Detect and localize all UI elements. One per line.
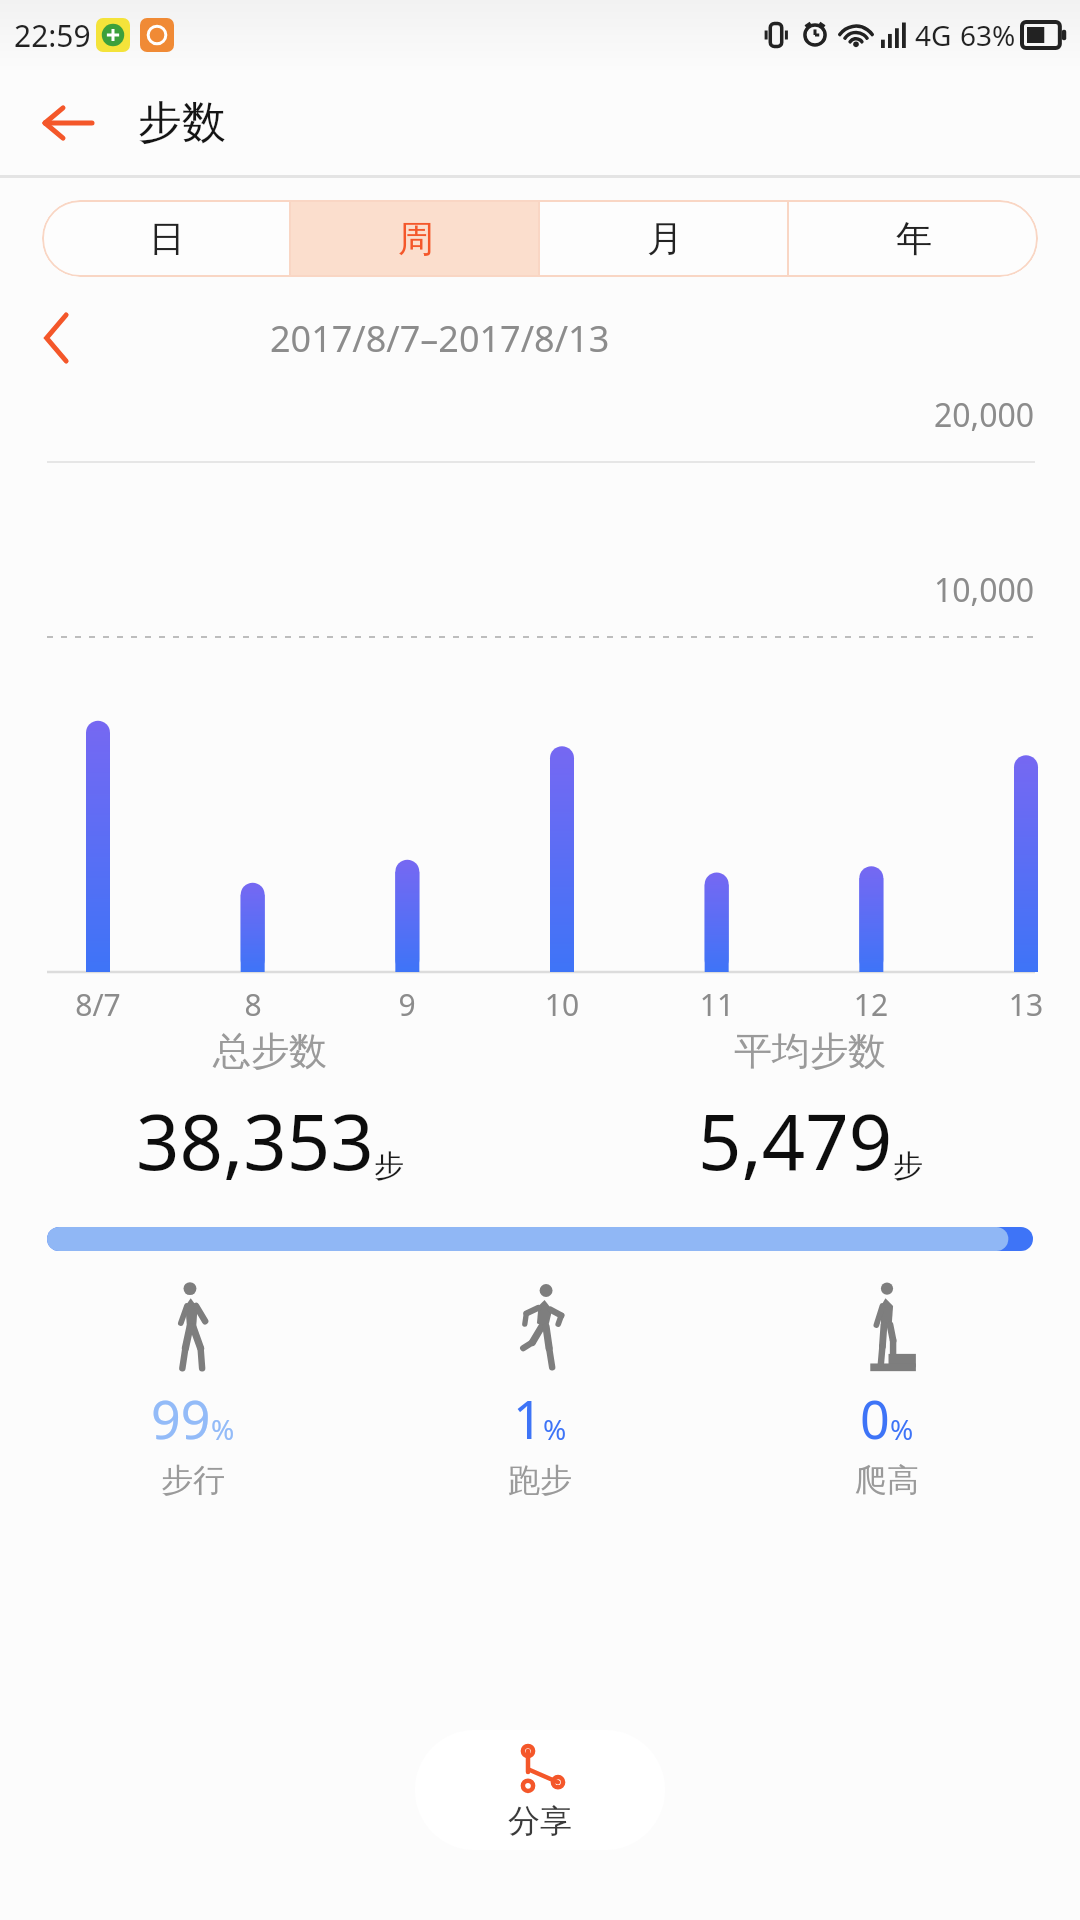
staticText: % bbox=[211, 1410, 235, 1448]
button[interactable]: 月 bbox=[540, 200, 789, 277]
staticText: 步数 bbox=[138, 95, 226, 150]
staticText: 步 bbox=[374, 1147, 404, 1185]
staticText: 爬高 bbox=[855, 1460, 919, 1500]
staticText: 5,479 bbox=[698, 1089, 893, 1193]
staticText: 38,353 bbox=[136, 1089, 374, 1193]
staticText: 9 bbox=[367, 984, 447, 1025]
staticText: 20,000 bbox=[934, 393, 1035, 437]
staticText: % bbox=[890, 1410, 914, 1448]
button[interactable]: 分享 bbox=[415, 1730, 665, 1850]
staticText: 步行 bbox=[161, 1460, 225, 1500]
button[interactable]: Back bbox=[30, 86, 104, 160]
staticText: 99 bbox=[151, 1383, 211, 1454]
staticText: 周 bbox=[398, 216, 434, 261]
button[interactable]: 1 bbox=[366, 1279, 713, 1500]
button[interactable]: 0 bbox=[713, 1279, 1060, 1500]
staticText: 总步数 bbox=[213, 1027, 327, 1075]
button[interactable]: 年 bbox=[789, 200, 1038, 277]
staticText: 平均步数 bbox=[734, 1027, 886, 1075]
staticText: 0 bbox=[860, 1383, 890, 1454]
staticText: 22:59 bbox=[14, 15, 91, 56]
staticText: 10,000 bbox=[934, 568, 1035, 612]
staticText: % bbox=[543, 1410, 567, 1448]
staticText: 10 bbox=[522, 984, 602, 1025]
staticText: 8 bbox=[213, 984, 293, 1025]
button[interactable]: Previous week bbox=[22, 303, 92, 373]
staticText: 13 bbox=[986, 984, 1066, 1025]
staticText: 4G bbox=[915, 16, 952, 54]
staticText: 步 bbox=[893, 1147, 923, 1185]
button[interactable]: 日 bbox=[42, 200, 291, 277]
button[interactable]: 99 bbox=[20, 1279, 366, 1500]
staticText: 1 bbox=[513, 1383, 543, 1454]
staticText: 分享 bbox=[508, 1801, 572, 1841]
staticText: 2017/8/7–2017/8/13 bbox=[270, 314, 610, 363]
staticText: 跑步 bbox=[508, 1460, 572, 1500]
staticText: 8/7 bbox=[58, 984, 138, 1025]
staticText: 年 bbox=[896, 216, 932, 261]
staticText: 12 bbox=[831, 984, 911, 1025]
staticText: 11 bbox=[677, 984, 757, 1025]
staticText: 日 bbox=[149, 216, 185, 261]
button[interactable]: 周 bbox=[291, 200, 540, 277]
staticText: 63% bbox=[960, 16, 1016, 54]
staticText: 月 bbox=[647, 216, 683, 261]
